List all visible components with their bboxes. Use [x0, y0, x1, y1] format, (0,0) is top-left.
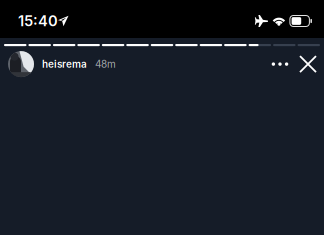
button[interactable]: heisrema	[8, 51, 116, 77]
button[interactable]: Close	[294, 50, 322, 78]
button[interactable]: More options	[266, 50, 294, 78]
staticText: 48m	[95, 58, 116, 70]
staticText: 15:40	[18, 12, 58, 30]
staticText: heisrema	[42, 58, 87, 70]
